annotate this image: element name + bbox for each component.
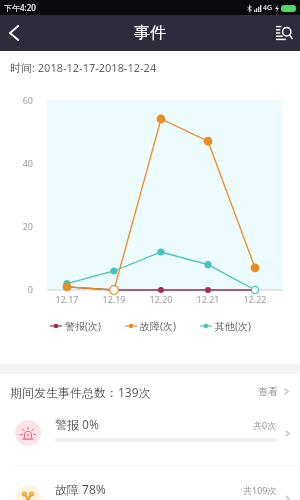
button[interactable]: 期间发生事件总数：139次 xyxy=(0,374,300,401)
button[interactable]: 警报 0% xyxy=(0,401,300,465)
staticText: 12.22 xyxy=(239,293,271,305)
staticText: 4G xyxy=(263,3,273,13)
staticText: 12.20 xyxy=(145,293,177,305)
staticText: 12.17 xyxy=(51,293,83,305)
staticText: 其他(次) xyxy=(215,319,251,333)
staticText: 40 xyxy=(12,157,33,169)
staticText: 期间发生事件总数：139次 xyxy=(10,384,151,400)
staticText: 警报 0% xyxy=(55,416,99,432)
staticText: 下午4:20 xyxy=(4,2,36,13)
staticText: 0 xyxy=(12,283,33,295)
staticText: 事件 xyxy=(134,23,166,43)
staticText: 时间: 2018-12-17-2018-12-24 xyxy=(10,60,157,75)
staticText: 共109次 xyxy=(243,484,277,496)
button[interactable]: Back xyxy=(0,19,28,47)
button[interactable]: Filter search xyxy=(268,17,300,49)
staticText: 共0次 xyxy=(253,419,277,431)
staticText: 查看 xyxy=(258,385,278,398)
staticText: 12.21 xyxy=(192,293,224,305)
staticText: 警报(次) xyxy=(65,319,101,333)
button[interactable]: 故障 78% xyxy=(0,466,300,500)
staticText: 故障 78% xyxy=(55,481,106,497)
staticText: 12.19 xyxy=(98,293,130,305)
staticText: 60 xyxy=(12,94,33,106)
staticText: 故障(次) xyxy=(140,319,176,333)
staticText: 20 xyxy=(12,220,33,232)
